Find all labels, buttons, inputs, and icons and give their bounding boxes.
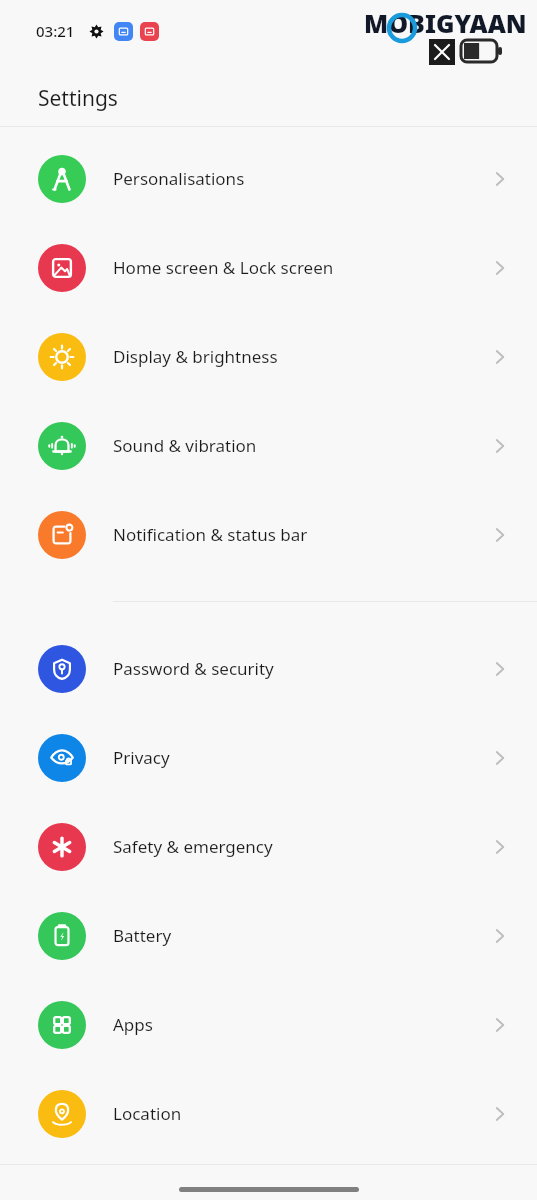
staticText: Location xyxy=(113,1102,489,1125)
staticText: Display & brightness xyxy=(113,345,489,368)
staticText: Privacy xyxy=(113,746,489,769)
staticText: 03:21 xyxy=(36,21,75,41)
staticText: Settings xyxy=(38,84,118,113)
staticText: Home screen & Lock screen xyxy=(113,256,489,279)
staticText: Battery xyxy=(113,924,489,947)
staticText: Notification & status bar xyxy=(113,523,489,546)
staticText: Personalisations xyxy=(113,167,489,190)
button[interactable]: Safety & emergency xyxy=(0,802,537,891)
button[interactable]: Apps xyxy=(0,980,537,1069)
button[interactable]: Home screen & Lock screen xyxy=(0,223,537,312)
button[interactable]: Location xyxy=(0,1069,537,1158)
button[interactable]: Battery xyxy=(0,891,537,980)
button[interactable]: Privacy xyxy=(0,713,537,802)
button[interactable]: Personalisations xyxy=(0,134,537,223)
button[interactable]: Display & brightness xyxy=(0,312,537,401)
staticText: Safety & emergency xyxy=(113,835,489,858)
button[interactable]: Notification & status bar xyxy=(0,490,537,579)
staticText: Password & security xyxy=(113,657,489,680)
staticText: Apps xyxy=(113,1013,489,1036)
staticText: MOBIGYAAN xyxy=(364,6,527,40)
button[interactable]: Sound & vibration xyxy=(0,401,537,490)
button[interactable]: Password & security xyxy=(0,624,537,713)
staticText: Sound & vibration xyxy=(113,434,489,457)
